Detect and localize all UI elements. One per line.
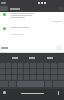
button[interactable]: More options xyxy=(59,7,63,11)
button[interactable]: Back xyxy=(0,6,8,11)
button[interactable]: Voice input xyxy=(58,91,59,95)
button[interactable]: Home xyxy=(21,93,44,94)
button[interactable]: Emoji xyxy=(3,91,6,94)
button[interactable]: Send xyxy=(56,45,62,51)
button[interactable] xyxy=(1,43,56,53)
button[interactable] xyxy=(3,27,64,30)
button[interactable] xyxy=(3,13,64,18)
